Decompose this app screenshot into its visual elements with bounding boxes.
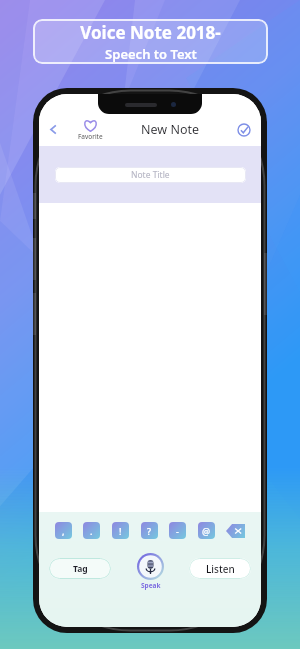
button[interactable]: Voice Note 2018- [33,19,268,64]
staticText: @ [202,525,211,537]
staticText: Speech to Text [105,45,197,63]
staticText: ? [147,525,152,537]
button[interactable]: Speak [137,553,164,590]
staticText: . [90,525,93,537]
button[interactable]: Backspace [226,524,245,538]
staticText: Listen [206,562,235,576]
staticText: - [176,525,179,537]
button[interactable]: Save note [227,113,261,146]
button[interactable]: Back [39,113,67,146]
staticText: , [62,525,65,537]
button[interactable]: ! [112,522,129,539]
staticText: Voice Note 2018- [80,21,221,44]
button[interactable]: - [169,522,186,539]
staticText: Favorite [78,132,103,141]
button[interactable]: @ [198,522,215,539]
button[interactable]: , [55,522,72,539]
button[interactable]: Note Title [55,167,246,183]
staticText: ! [119,525,122,537]
staticText: Tag [73,563,88,575]
button[interactable]: Listen [189,558,251,579]
staticText: Speak [141,581,161,590]
button[interactable]: Tag [49,558,111,579]
button[interactable]: Favorite [67,113,113,146]
staticText: Note Title [131,169,170,181]
button[interactable]: ? [141,522,158,539]
staticText: New Note [141,121,200,138]
button[interactable]: . [83,522,100,539]
